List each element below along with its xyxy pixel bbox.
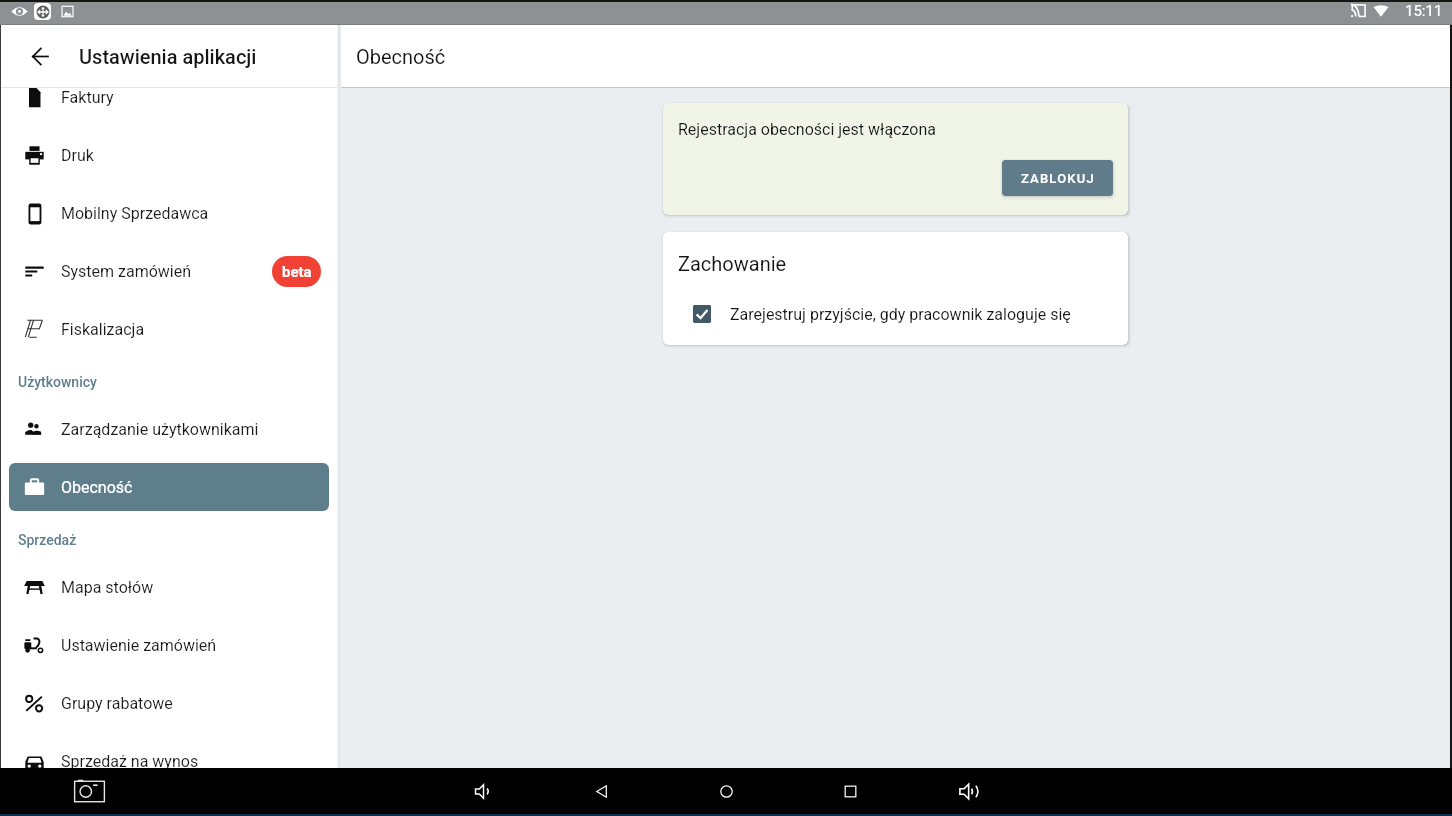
staticText: Użytkownicy (18, 374, 97, 390)
button[interactable]: Mapa stołów (9, 563, 329, 611)
button[interactable]: Back (585, 774, 619, 808)
button[interactable]: Zarządzanie użytkownikami (9, 405, 329, 453)
button[interactable]: Recents (833, 774, 867, 808)
staticText: Fiskalizacja (61, 320, 145, 339)
button[interactable]: Faktury (9, 88, 329, 121)
staticText: Sprzedaż (18, 532, 77, 548)
staticText: Obecność (61, 478, 133, 497)
button[interactable]: Fiskalizacja (9, 305, 329, 353)
staticText: Mapa stołów (61, 578, 154, 597)
staticText: Sprzedaż na wynos (61, 752, 199, 768)
button[interactable]: Sprzedaż na wynos (9, 737, 329, 768)
button[interactable]: Screenshot (72, 774, 106, 808)
staticText: System zamówień (61, 262, 192, 281)
staticText: Grupy rabatowe (61, 694, 173, 713)
button[interactable]: Home (709, 774, 743, 808)
button[interactable]: Ustawienie zamówień (9, 621, 329, 669)
button[interactable]: Zarejestruj przyjście, gdy pracownik zal… (663, 294, 1128, 334)
staticText: Faktury (61, 88, 114, 107)
staticText: Obecność (356, 45, 446, 68)
button[interactable]: ZABLOKUJ (1002, 160, 1113, 196)
staticText: Rejestracja obecności jest włączona (678, 120, 936, 139)
staticText: 15:11 (1405, 2, 1443, 20)
button[interactable]: Volume up (953, 774, 987, 808)
button[interactable]: Obecność (9, 463, 329, 511)
button[interactable]: Volume down (466, 774, 500, 808)
staticText: beta (282, 263, 312, 281)
button[interactable]: Back (23, 39, 57, 73)
staticText: Mobilny Sprzedawca (61, 204, 209, 223)
staticText: Ustawienia aplikacji (79, 45, 257, 68)
button[interactable]: Mobilny Sprzedawca (9, 189, 329, 237)
button[interactable]: Grupy rabatowe (9, 679, 329, 727)
staticText: Zarejestruj przyjście, gdy pracownik zal… (730, 305, 1071, 324)
staticText: Ustawienie zamówień (61, 636, 217, 655)
staticText: Zachowanie (678, 252, 787, 275)
staticText: Druk (61, 146, 94, 165)
button[interactable]: Druk (9, 131, 329, 179)
staticText: Zarządzanie użytkownikami (61, 420, 259, 439)
staticText: ZABLOKUJ (1021, 171, 1095, 186)
button[interactable]: System zamówień (9, 247, 329, 295)
